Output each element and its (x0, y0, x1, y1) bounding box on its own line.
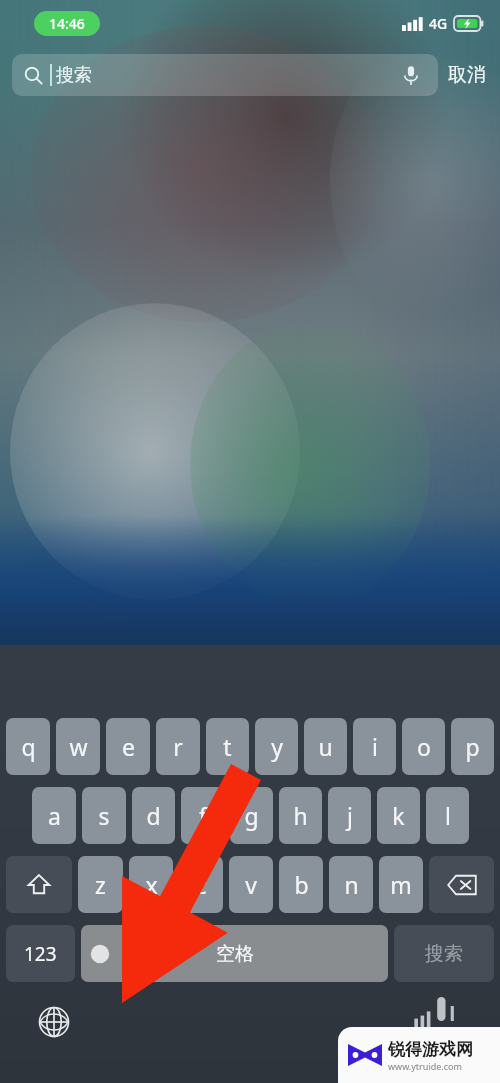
button[interactable]: n (329, 856, 373, 913)
button[interactable]: a (32, 787, 76, 844)
button[interactable]: Voice search (396, 60, 426, 90)
staticText: f (199, 800, 207, 831)
staticText: i (372, 731, 378, 762)
button[interactable]: 取消 (448, 63, 486, 87)
button[interactable]: l (426, 787, 469, 844)
staticText: y (271, 731, 283, 762)
staticText: 搜索 (425, 942, 463, 966)
staticText: 空格 (216, 942, 254, 966)
staticText: x (145, 869, 158, 900)
staticText: r (173, 731, 183, 762)
staticText: 锐得游戏网 (388, 1039, 473, 1060)
button[interactable]: d (132, 787, 175, 844)
button[interactable]: 搜索 (394, 925, 494, 982)
button[interactable]: y (255, 718, 298, 775)
staticText: 搜索 (56, 64, 92, 87)
staticText: 取消 (448, 63, 486, 87)
button[interactable]: 123 (6, 925, 75, 982)
button[interactable]: r (156, 718, 200, 775)
button[interactable]: c (179, 856, 223, 913)
button[interactable]: o (402, 718, 445, 775)
staticText: a (48, 800, 61, 831)
button[interactable]: u (304, 718, 347, 775)
button[interactable]: i (353, 718, 396, 775)
button[interactable]: b (279, 856, 323, 913)
staticText: g (244, 800, 259, 831)
staticText: t (223, 731, 232, 762)
button[interactable]: g (230, 787, 273, 844)
button[interactable]: w (56, 718, 100, 775)
button[interactable]: x (129, 856, 173, 913)
staticText: s (98, 800, 110, 831)
staticText: z (95, 869, 106, 900)
staticText: 4G (429, 14, 448, 33)
button[interactable]: Backspace (429, 856, 494, 913)
staticText: j (347, 800, 353, 831)
staticText: u (318, 731, 333, 762)
button[interactable]: k (377, 787, 420, 844)
staticText: l (445, 800, 451, 831)
button[interactable]: j (328, 787, 371, 844)
button[interactable]: Change keyboard language (36, 1004, 72, 1040)
staticText: b (294, 869, 309, 900)
staticText: d (146, 800, 161, 831)
staticText: p (465, 731, 480, 762)
staticText: 123 (24, 941, 57, 967)
staticText: n (344, 869, 359, 900)
button[interactable]: q (6, 718, 50, 775)
staticText: q (21, 731, 36, 762)
button[interactable]: t (206, 718, 249, 775)
button[interactable]: p (451, 718, 494, 775)
button[interactable]: m (379, 856, 423, 913)
button[interactable]: 空格 (81, 925, 388, 982)
button[interactable]: e (106, 718, 150, 775)
staticText: h (293, 800, 308, 831)
staticText: e (122, 731, 135, 762)
button[interactable]: s (82, 787, 126, 844)
staticText: c (195, 869, 207, 900)
staticText: w (69, 731, 88, 762)
button[interactable]: z (78, 856, 123, 913)
button[interactable]: f (181, 787, 224, 844)
staticText: v (245, 869, 257, 900)
button[interactable]: Shift (6, 856, 72, 913)
staticText: 14:46 (49, 14, 85, 33)
staticText: www.ytruide.com (388, 1060, 462, 1072)
staticText: m (390, 869, 412, 900)
button[interactable]: h (279, 787, 322, 844)
staticText: o (417, 731, 431, 762)
button[interactable]: v (229, 856, 273, 913)
button[interactable]: 搜索 (12, 54, 438, 96)
staticText: k (392, 800, 405, 831)
